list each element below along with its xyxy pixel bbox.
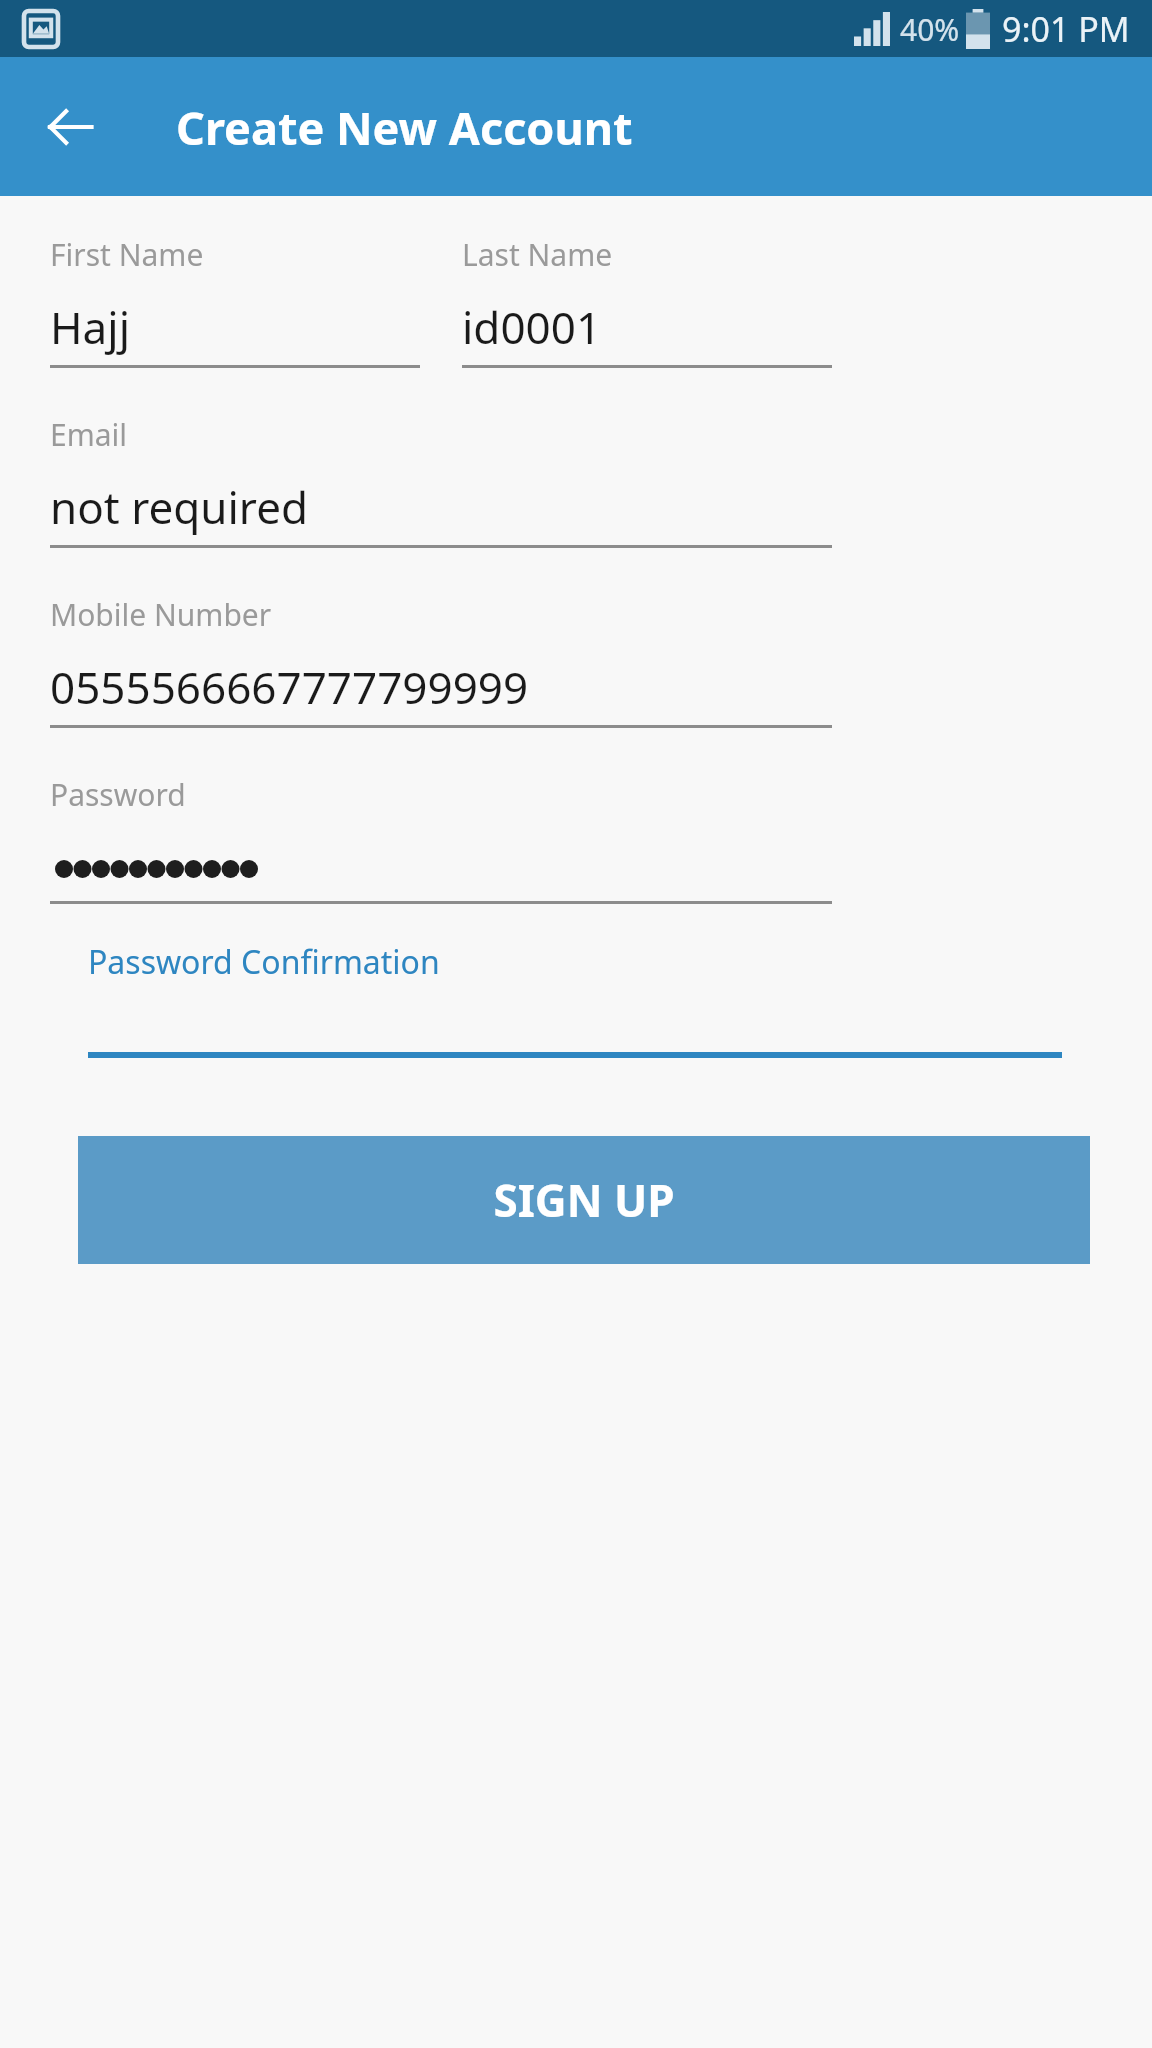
staticText: 40%	[900, 9, 960, 50]
staticText: 9:01 PM	[1002, 6, 1130, 52]
staticText: Hajj	[50, 297, 130, 357]
staticText: not required	[50, 477, 309, 537]
staticText: Mobile Number	[50, 594, 272, 635]
staticText: 0555566667777799999	[50, 657, 529, 717]
staticText: id0001	[462, 297, 602, 357]
button[interactable]: Password Confirmation	[88, 940, 1062, 1058]
button[interactable]: SIGN UP	[78, 1136, 1090, 1264]
staticText: Email	[50, 414, 128, 455]
staticText: Password	[50, 774, 186, 815]
button[interactable]: Last Name	[462, 234, 832, 368]
staticText: Create New Account	[176, 97, 633, 158]
button[interactable]: Email	[50, 414, 832, 548]
staticText: SIGN UP	[493, 1170, 675, 1230]
button[interactable]: First Name	[50, 234, 420, 368]
staticText: Last Name	[462, 234, 613, 275]
staticText: First Name	[50, 234, 204, 275]
button[interactable]: Mobile Number	[50, 594, 832, 728]
button[interactable]: Password	[50, 774, 832, 904]
staticText: Password Confirmation	[88, 940, 440, 984]
button[interactable]: Back	[26, 83, 114, 171]
